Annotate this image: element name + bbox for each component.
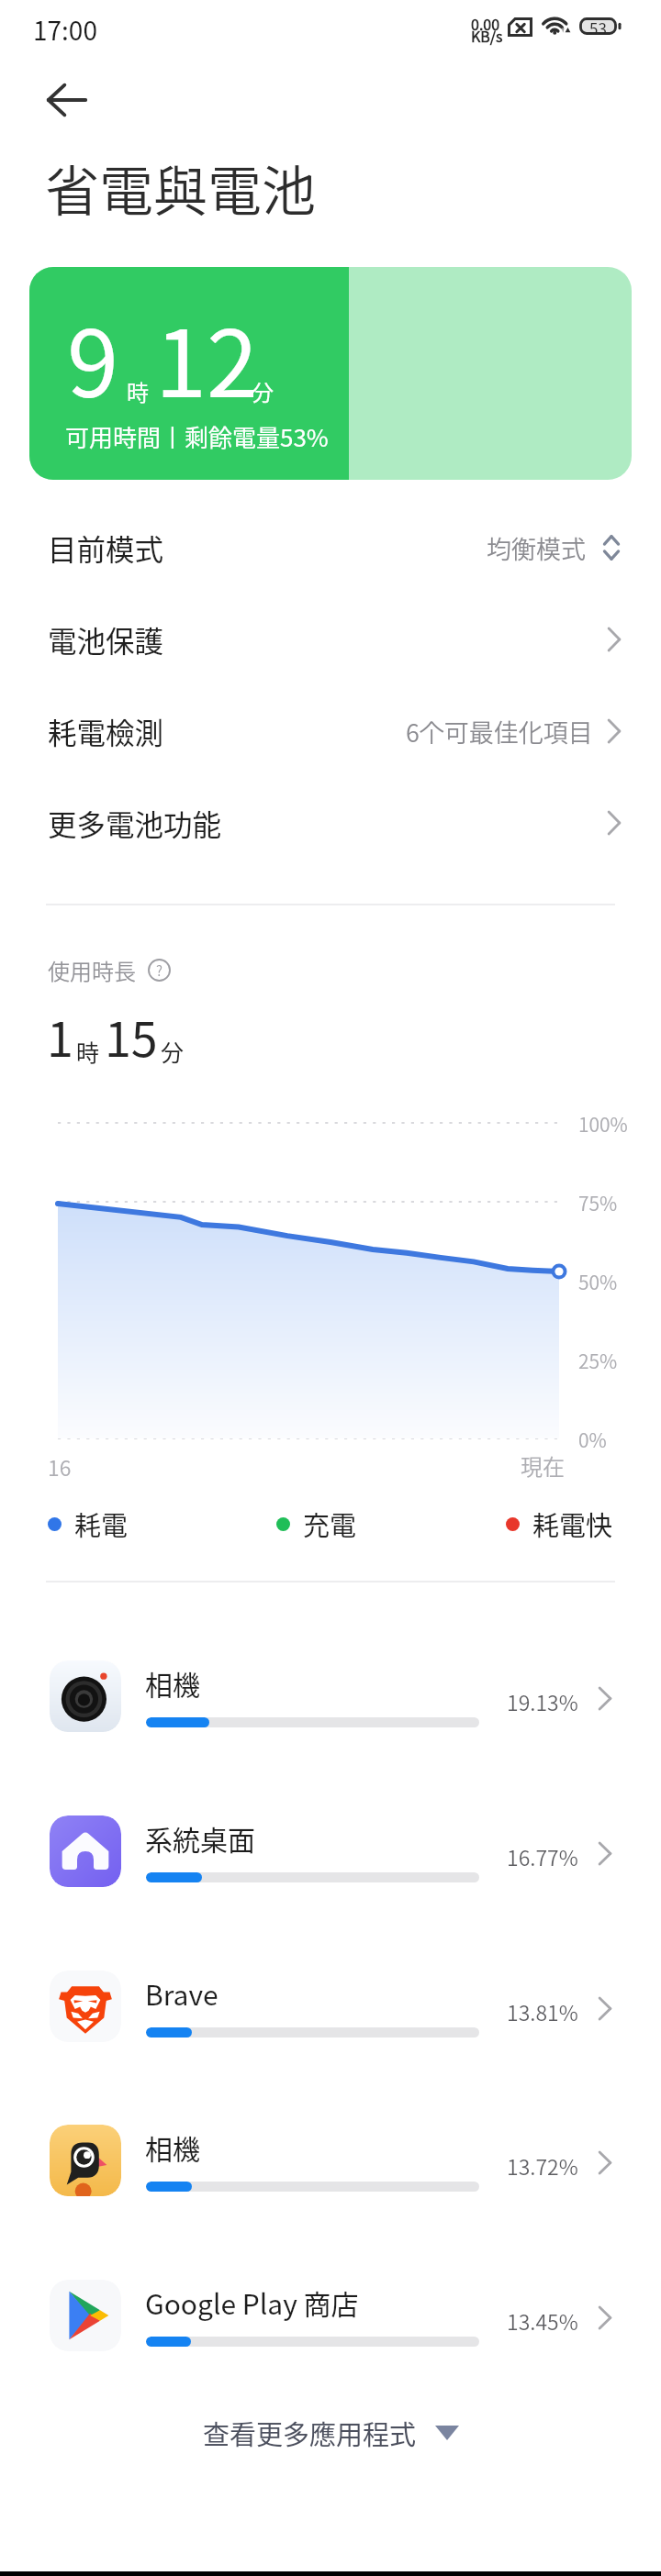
button[interactable]: Back (24, 68, 110, 132)
button[interactable]: 目前模式 (0, 502, 661, 594)
staticText: 16 (48, 1451, 72, 1482)
staticText: 19.13% (507, 1686, 578, 1716)
staticText: 16.77% (507, 1841, 578, 1871)
staticText: 時 (127, 375, 149, 407)
staticText: 耗電 (74, 1505, 129, 1543)
staticText: 目前模式 (48, 527, 164, 569)
staticText: 100% (578, 1110, 628, 1138)
staticText: 使用時長 (48, 954, 136, 986)
button[interactable]: 電池保護 (0, 594, 661, 685)
staticText: 17:00 (33, 11, 97, 49)
staticText: 電池保護 (48, 618, 164, 661)
staticText: 耗電檢測 (48, 710, 164, 752)
staticText: 相機 (145, 1663, 200, 1703)
staticText: 12 (155, 290, 259, 424)
staticText: 查看更多應用程式 (203, 2414, 417, 2452)
button[interactable]: 系統桌面 (0, 1784, 661, 1920)
staticText: 省電與電池 (45, 149, 317, 227)
staticText: ? (156, 960, 163, 981)
button[interactable]: Google Play 商店 (0, 2248, 661, 2384)
staticText: 13.72% (507, 2150, 578, 2181)
staticText: 時 (76, 1035, 100, 1068)
staticText: 更多電池功能 (48, 802, 222, 844)
button[interactable]: 耗電檢測 (0, 685, 661, 777)
staticText: Brave (145, 1973, 218, 2013)
staticText: 耗電快 (532, 1505, 613, 1543)
staticText: 50% (578, 1268, 618, 1295)
staticText: 相機 (145, 2127, 200, 2167)
staticText: 系統桌面 (145, 1818, 255, 1858)
staticText: 9 (67, 290, 119, 424)
staticText: 13.81% (507, 1996, 578, 2026)
staticText: 25% (578, 1347, 618, 1374)
staticText: 1 (47, 1002, 73, 1071)
button[interactable]: 相機 (0, 2093, 661, 2229)
staticText: 現在 (521, 1449, 565, 1482)
staticText: 分 (252, 375, 274, 407)
staticText: 均衡模式 (487, 530, 586, 566)
staticText: 可用時間丨剩餘電量53% (65, 419, 329, 454)
staticText: 充電 (303, 1505, 357, 1543)
staticText: 53 (589, 17, 607, 34)
staticText: 分 (161, 1035, 185, 1068)
staticText: 0.00 (471, 13, 500, 34)
staticText: 13.45% (507, 2305, 578, 2336)
button[interactable]: 查看更多應用程式 (0, 2394, 661, 2471)
staticText: Google Play 商店 (145, 2282, 359, 2322)
button[interactable]: 更多電池功能 (0, 777, 661, 869)
button[interactable]: 相機 (0, 1629, 661, 1765)
button[interactable]: Brave (0, 1939, 661, 2075)
staticText: 75% (578, 1189, 618, 1216)
staticText: 6个可最佳化項目 (406, 714, 593, 749)
staticText: 15 (105, 1002, 158, 1071)
button[interactable]: 9 (29, 267, 632, 480)
staticText: KB/s (471, 25, 503, 46)
staticText: 0% (578, 1426, 607, 1453)
